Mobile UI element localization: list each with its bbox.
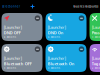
- staticText: 3 actions: [92, 35, 100, 39]
- staticText: Bluetooth OFF: [4, 61, 32, 66]
- button[interactable]: [Launcher]: [45, 44, 86, 72]
- staticText: DND On: [48, 30, 64, 35]
- staticText: Pass On: [92, 30, 100, 35]
- staticText: 2 actions: [92, 66, 100, 70]
- staticText: Bluetooth On: [48, 61, 75, 66]
- staticText: Sélectionner: [2, 5, 20, 8]
- staticText: [Launcher]: [4, 25, 22, 30]
- button[interactable]: [Launcher]: [45, 13, 86, 41]
- staticText: 3 actions: [48, 66, 60, 70]
- staticText: Tous les raccourcis: [73, 5, 98, 8]
- staticText: 4 actions: [48, 35, 60, 39]
- staticText: Toggle Wi-Fi: [92, 61, 100, 66]
- button[interactable]: [Launcher]: [89, 13, 100, 41]
- button[interactable]: [Launcher]: [1, 44, 42, 72]
- button[interactable]: Tous les raccourcis: [73, 5, 98, 8]
- button[interactable]: [Launcher]: [1, 13, 42, 41]
- button[interactable]: Add shortcut: [30, 4, 35, 9]
- staticText: [Launcher]: [48, 25, 66, 30]
- button[interactable]: [Launcher]: [89, 44, 100, 72]
- button[interactable]: Sélectionner: [2, 5, 30, 8]
- staticText: [Launcher]: [48, 56, 66, 61]
- staticText: 4 actions: [4, 35, 16, 39]
- staticText: DND OFF: [4, 30, 21, 35]
- staticText: [Launcher]: [4, 56, 22, 61]
- staticText: [Launcher]: [92, 56, 100, 61]
- staticText: 3 actions: [4, 66, 16, 70]
- staticText: [Launcher]: [92, 25, 100, 30]
